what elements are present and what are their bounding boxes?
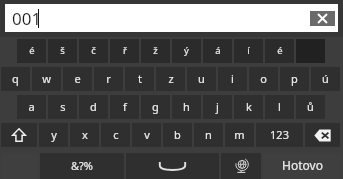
- button[interactable]: Switch keyboard language: [221, 153, 261, 179]
- button[interactable]: i: [218, 67, 247, 91]
- button[interactable]: o: [249, 67, 278, 91]
- button[interactable]: 001: [5, 4, 338, 32]
- staticText: z: [168, 71, 174, 86]
- button[interactable]: x: [70, 123, 99, 147]
- button[interactable]: č: [79, 39, 108, 63]
- button[interactable]: t: [125, 67, 154, 91]
- staticText: a: [28, 99, 35, 114]
- button[interactable]: k: [234, 95, 263, 119]
- staticText: t: [138, 71, 142, 86]
- staticText: é: [277, 44, 283, 57]
- button[interactable]: w: [32, 67, 61, 91]
- button[interactable]: ř: [110, 39, 139, 63]
- button[interactable]: e: [63, 67, 92, 91]
- button[interactable]: f: [110, 95, 139, 119]
- button[interactable]: y: [39, 123, 68, 147]
- button[interactable]: q: [1, 67, 30, 91]
- button[interactable]: s: [48, 95, 77, 119]
- button[interactable]: p: [280, 67, 309, 91]
- button[interactable]: Shift: [1, 123, 37, 147]
- staticText: w: [42, 71, 51, 86]
- button[interactable]: Hotovo: [263, 153, 342, 179]
- staticText: ž: [153, 44, 158, 57]
- button[interactable]: é: [265, 39, 294, 63]
- button[interactable]: ů: [296, 95, 325, 119]
- button[interactable]: g: [141, 95, 170, 119]
- button[interactable]: j: [203, 95, 232, 119]
- staticText: 123: [270, 127, 289, 142]
- staticText: j: [216, 99, 219, 114]
- button[interactable]: v: [132, 123, 161, 147]
- button[interactable]: Backspace: [305, 123, 340, 147]
- button[interactable]: u: [187, 67, 216, 91]
- staticText: i: [231, 71, 234, 86]
- button[interactable]: &?%: [40, 153, 124, 179]
- button[interactable]: Space: [126, 153, 219, 179]
- staticText: ú: [322, 71, 329, 86]
- staticText: Hotovo: [282, 157, 323, 173]
- staticText: x: [82, 127, 88, 142]
- staticText: í: [247, 44, 250, 57]
- button[interactable]: š: [48, 39, 77, 63]
- button[interactable]: ý: [172, 39, 201, 63]
- button[interactable]: c: [101, 123, 130, 147]
- staticText: ů: [307, 99, 314, 114]
- button[interactable]: ž: [141, 39, 170, 63]
- button[interactable]: d: [79, 95, 108, 119]
- staticText: š: [60, 44, 65, 57]
- staticText: r: [106, 71, 111, 86]
- button[interactable]: n: [194, 123, 223, 147]
- staticText: u: [198, 71, 205, 86]
- staticText: m: [234, 127, 245, 142]
- staticText: s: [60, 99, 66, 114]
- button[interactable]: m: [225, 123, 254, 147]
- staticText: c: [113, 127, 119, 142]
- staticText: f: [123, 99, 127, 114]
- staticText: n: [205, 127, 212, 142]
- staticText: d: [90, 99, 97, 114]
- staticText: k: [246, 99, 252, 114]
- staticText: l: [278, 99, 281, 114]
- staticText: é: [29, 44, 35, 57]
- button[interactable]: 123: [256, 123, 303, 147]
- staticText: g: [152, 99, 159, 114]
- staticText: ý: [184, 44, 189, 57]
- staticText: o: [260, 71, 267, 86]
- staticText: 001: [12, 7, 42, 30]
- button[interactable]: Clear text: [310, 11, 335, 26]
- button[interactable]: é: [17, 39, 46, 63]
- staticText: p: [291, 71, 298, 86]
- button[interactable]: h: [172, 95, 201, 119]
- staticText: ř: [123, 44, 127, 57]
- button[interactable]: í: [234, 39, 263, 63]
- button[interactable]: r: [94, 67, 123, 91]
- staticText: y: [51, 127, 57, 142]
- staticText: á: [215, 44, 221, 57]
- staticText: h: [183, 99, 190, 114]
- button[interactable]: b: [163, 123, 192, 147]
- staticText: q: [12, 71, 19, 86]
- staticText: &?%: [71, 158, 93, 173]
- staticText: e: [74, 71, 81, 86]
- button[interactable]: ú: [311, 67, 340, 91]
- button[interactable]: á: [203, 39, 232, 63]
- staticText: v: [144, 127, 150, 142]
- button[interactable]: l: [265, 95, 294, 119]
- staticText: č: [91, 44, 96, 57]
- button[interactable]: a: [17, 95, 46, 119]
- button[interactable]: z: [156, 67, 185, 91]
- staticText: b: [174, 127, 181, 142]
